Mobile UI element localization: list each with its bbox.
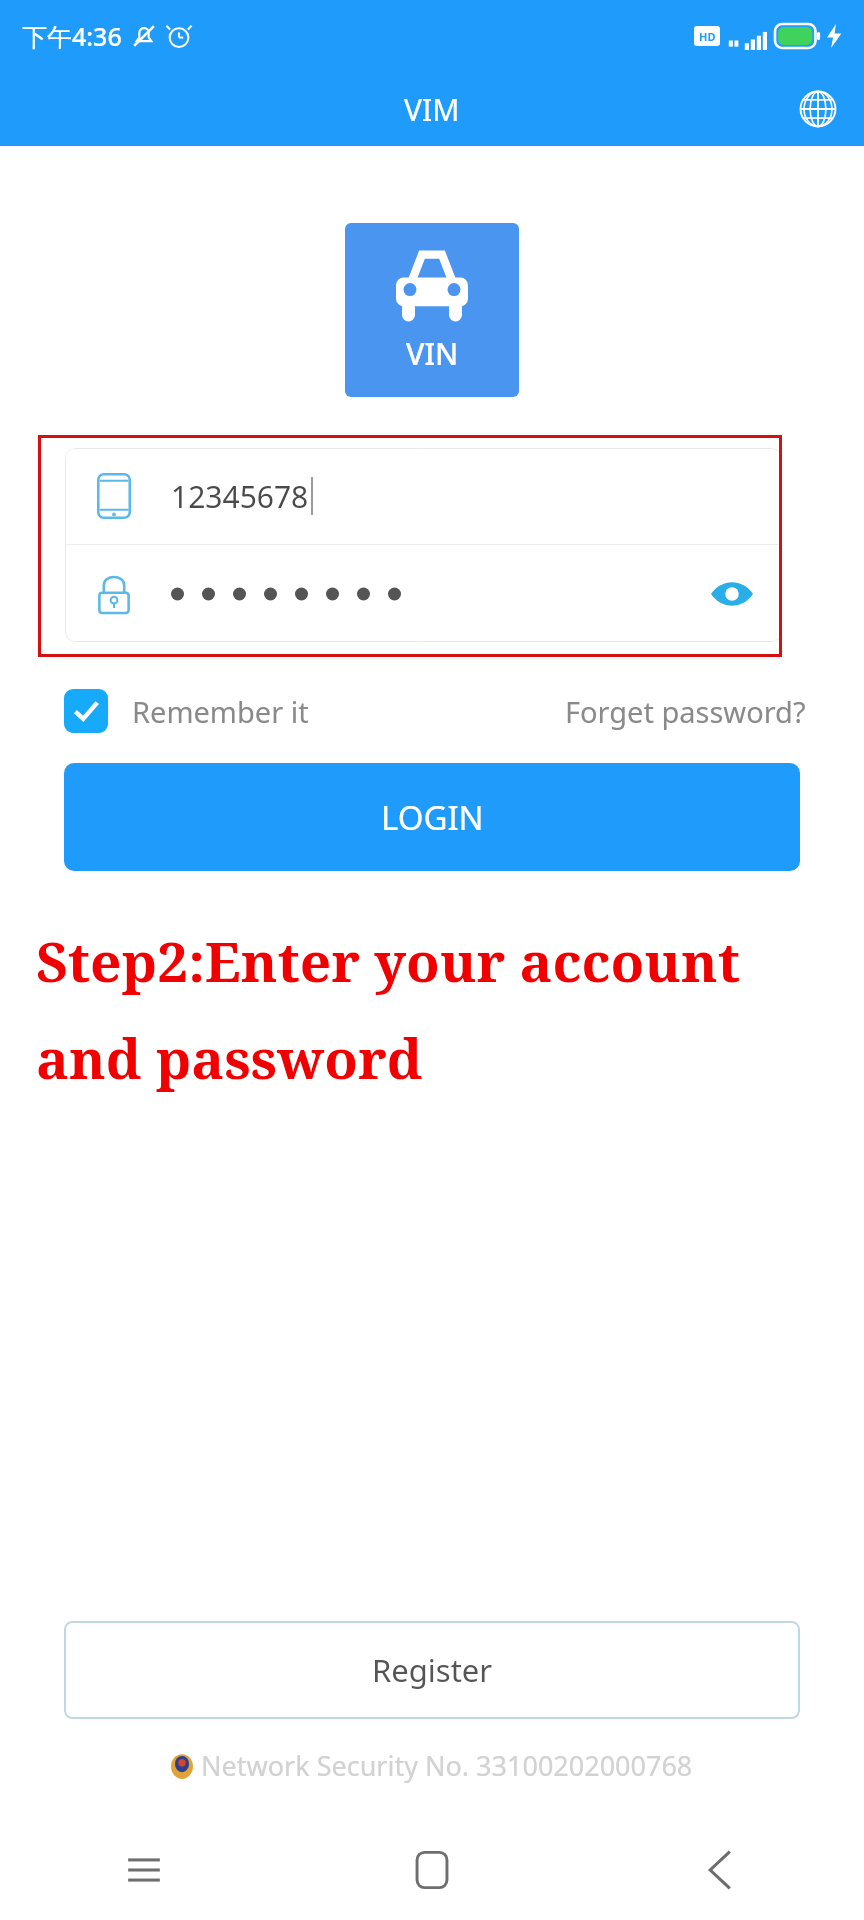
button[interactable]: Back [576,1820,864,1920]
button[interactable]: Register [64,1621,800,1719]
staticText: Register [372,1649,493,1691]
staticText: LOGIN [381,795,484,840]
staticText: HD [699,29,716,44]
staticText: Network Security No. 33100202000768 [201,1747,693,1784]
staticText: Forget password? [565,692,806,731]
button[interactable]: Show password [65,545,782,642]
button[interactable]: LOGIN [64,763,800,871]
staticText: 下午4:36 [22,19,122,53]
button[interactable]: Home [288,1820,576,1920]
button[interactable]: Language [790,81,846,137]
button[interactable]: 12345678 [65,448,782,544]
staticText: VIN [406,333,459,374]
button[interactable]: Recents [0,1820,288,1920]
button[interactable]: Remember it [64,689,309,733]
staticText: 12345678 [171,476,309,517]
button[interactable]: Show password [706,568,758,620]
staticText: Remember it [132,692,309,731]
button[interactable]: Forget password? [565,692,806,731]
staticText: VIM [404,89,460,130]
staticText: Step2:Enter your account [36,923,741,998]
staticText: and password [36,1020,423,1095]
